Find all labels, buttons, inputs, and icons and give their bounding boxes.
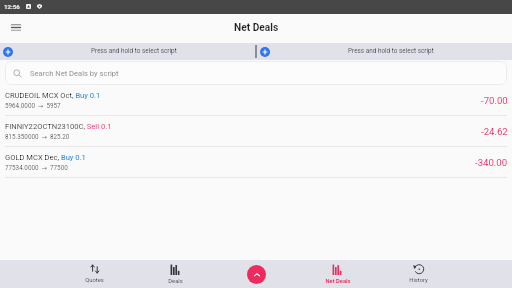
other: Add script <box>260 47 270 57</box>
staticText: History <box>409 277 428 284</box>
staticText: Press and hold to select script <box>348 47 434 55</box>
button[interactable]: FINNIY22OCTN23100C, Sell 0.1 <box>0 116 512 147</box>
button[interactable]: Net Deals <box>297 260 378 288</box>
staticText: FINNIY22OCTN23100C, Sell 0.1 <box>5 122 112 131</box>
staticText: -70.00 <box>481 95 508 106</box>
staticText: GOLD MCX Dec, Buy 0.1 <box>5 153 86 162</box>
button[interactable]: GOLD MCX Dec, Buy 0.1 <box>0 147 512 178</box>
button[interactable]: Add script <box>0 43 255 60</box>
staticText: 5964.0000 → 5957 <box>5 102 61 109</box>
staticText: Press and hold to select script <box>91 47 177 55</box>
button[interactable]: Deals <box>135 260 216 288</box>
staticText: 815.350000 → 825.20 <box>5 133 70 140</box>
button[interactable]: Menu <box>6 17 26 37</box>
button[interactable]: History <box>378 260 459 288</box>
staticText: Net Deals <box>234 22 279 34</box>
staticText: 12:56 <box>4 3 20 10</box>
staticText: Net Deals <box>325 278 351 285</box>
staticText: Quotes <box>85 277 104 284</box>
button[interactable]: Search Net Deals by script <box>5 61 507 85</box>
button[interactable]: Add script <box>257 43 512 60</box>
button[interactable]: Quotes <box>54 260 135 288</box>
other: Add script <box>3 47 13 57</box>
staticText: Deals <box>168 278 183 285</box>
staticText: -340.00 <box>475 157 508 168</box>
button[interactable]: CRUDEOIL MCX Oct, Buy 0.1 <box>0 85 512 116</box>
button[interactable]: Expand panel <box>247 265 266 284</box>
staticText: -24.62 <box>481 126 508 137</box>
staticText: 77534.0000 → 77500 <box>5 164 68 171</box>
staticText: CRUDEOIL MCX Oct, Buy 0.1 <box>5 91 101 100</box>
staticText: Search Net Deals by script <box>30 69 119 78</box>
